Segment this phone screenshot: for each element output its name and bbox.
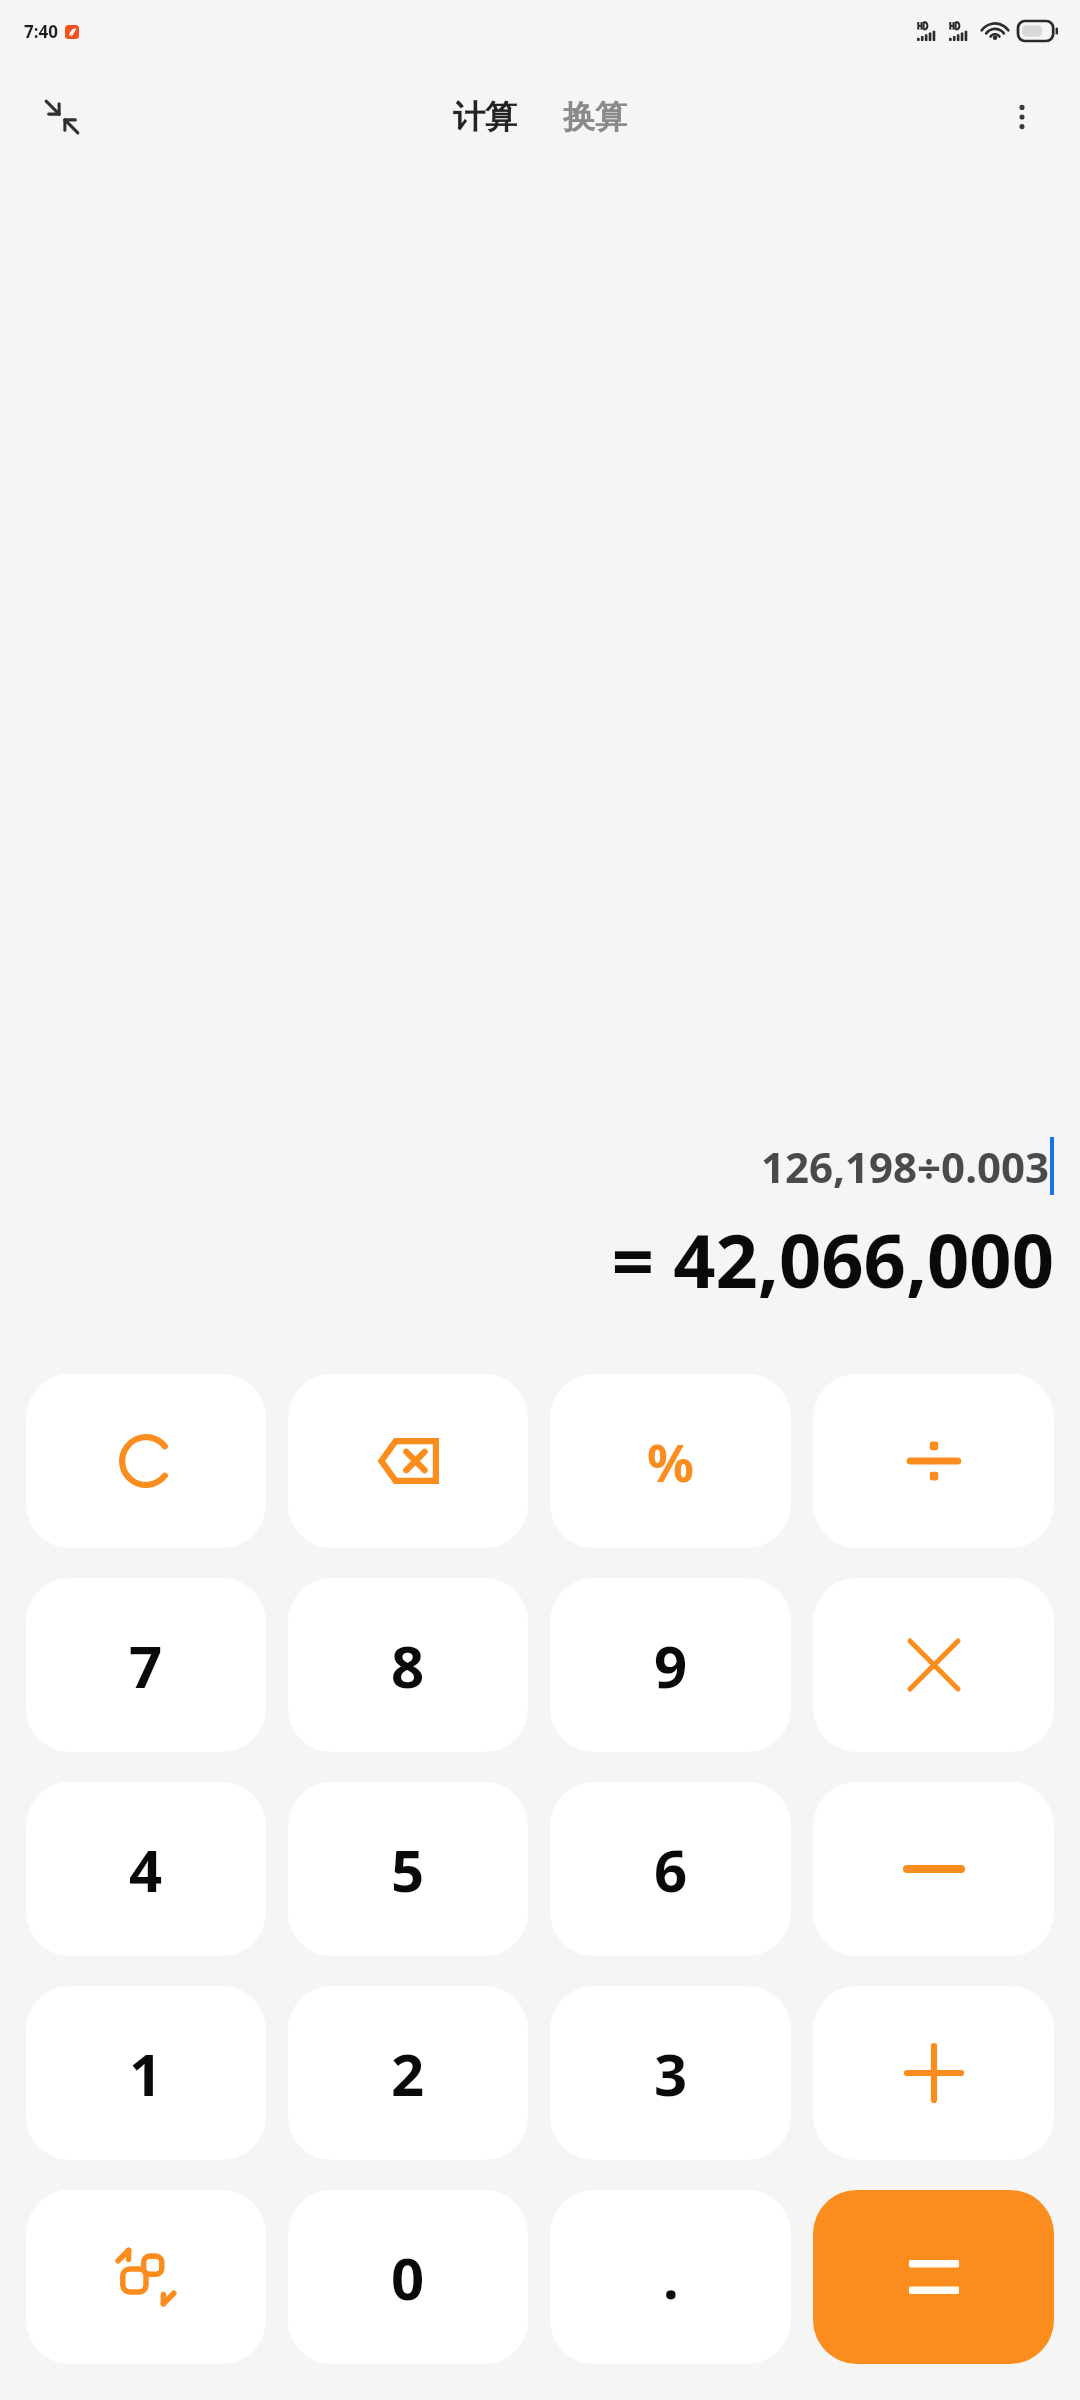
button[interactable]: 计算 <box>443 91 527 143</box>
staticText: 1 <box>129 2034 163 2113</box>
staticText: 0 <box>391 2238 425 2317</box>
staticText: 126,198÷0.003 <box>760 1138 1049 1195</box>
button[interactable]: 2 <box>288 1986 528 2160</box>
button[interactable]: More options <box>994 89 1050 145</box>
button[interactable]: 换算 <box>553 91 637 143</box>
button[interactable]: Collapse <box>34 89 90 145</box>
staticText: 2 <box>391 2034 425 2113</box>
staticText: 5 <box>391 1830 425 1909</box>
button[interactable]: Equals <box>813 2190 1054 2364</box>
staticText: 计算 <box>453 97 517 137</box>
staticText: 换算 <box>563 97 627 137</box>
staticText: = 42,066,000 <box>611 1209 1054 1310</box>
button[interactable]: 8 <box>288 1578 528 1752</box>
button[interactable]: . <box>550 2190 791 2364</box>
staticText: 4 <box>129 1830 163 1909</box>
button[interactable]: 7 <box>26 1578 266 1752</box>
button[interactable]: 5 <box>288 1782 528 1956</box>
staticText: . <box>663 2239 679 2315</box>
button[interactable]: Percent <box>550 1374 791 1548</box>
button[interactable]: 9 <box>550 1578 791 1752</box>
staticText: 6 <box>654 1830 688 1909</box>
staticText: 7:40 <box>24 20 58 43</box>
button[interactable]: 0 <box>288 2190 528 2364</box>
button[interactable]: Minus <box>813 1782 1054 1956</box>
staticText: 9 <box>654 1626 688 1705</box>
button[interactable]: 4 <box>26 1782 266 1956</box>
staticText: 7 <box>129 1626 163 1705</box>
staticText: 8 <box>391 1626 425 1705</box>
button[interactable]: 1 <box>26 1986 266 2160</box>
button[interactable]: 6 <box>550 1782 791 1956</box>
button[interactable]: Divide <box>813 1374 1054 1548</box>
staticText: 3 <box>654 2034 688 2113</box>
button[interactable]: Plus <box>813 1986 1054 2160</box>
button[interactable]: Unit conversion <box>26 2190 266 2364</box>
button[interactable]: 3 <box>550 1986 791 2160</box>
button[interactable]: Backspace <box>288 1374 528 1548</box>
button[interactable]: Multiply <box>813 1578 1054 1752</box>
button[interactable]: Clear <box>26 1374 266 1548</box>
staticText: % <box>647 1426 694 1497</box>
